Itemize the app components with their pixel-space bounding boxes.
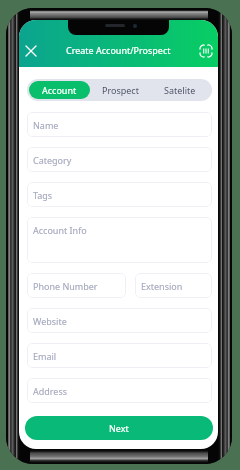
staticText: Category (33, 154, 72, 166)
staticText: Email (33, 350, 57, 362)
button[interactable]: Name (27, 112, 212, 137)
button[interactable]: Website (27, 308, 212, 333)
staticText: Satelite (164, 84, 196, 96)
button[interactable]: Account (29, 81, 90, 99)
button[interactable]: Next (25, 416, 213, 440)
staticText: Account Info (33, 224, 87, 236)
button[interactable]: Tags (27, 182, 212, 207)
staticText: Next (109, 422, 129, 434)
staticText: Prospect (102, 84, 139, 96)
staticText: Address (33, 385, 68, 397)
staticText: Name (33, 119, 59, 131)
staticText: Account (42, 84, 77, 96)
button[interactable]: Satelite (150, 81, 210, 99)
button[interactable]: Category (27, 147, 212, 172)
staticText: Create Account/Prospect (66, 44, 171, 56)
button[interactable]: Email (27, 343, 212, 368)
button[interactable]: Phone Number (27, 273, 126, 298)
button[interactable]: Account Info (27, 217, 212, 263)
button[interactable]: Scan barcode (194, 39, 218, 63)
staticText: Tags (33, 189, 53, 201)
staticText: Extension (141, 280, 183, 292)
button[interactable]: Address (27, 378, 212, 403)
button[interactable]: Close (19, 39, 43, 63)
button[interactable]: Extension (135, 273, 212, 298)
staticText: Website (33, 315, 67, 327)
button[interactable]: Prospect (90, 81, 150, 99)
staticText: Phone Number (33, 280, 98, 292)
